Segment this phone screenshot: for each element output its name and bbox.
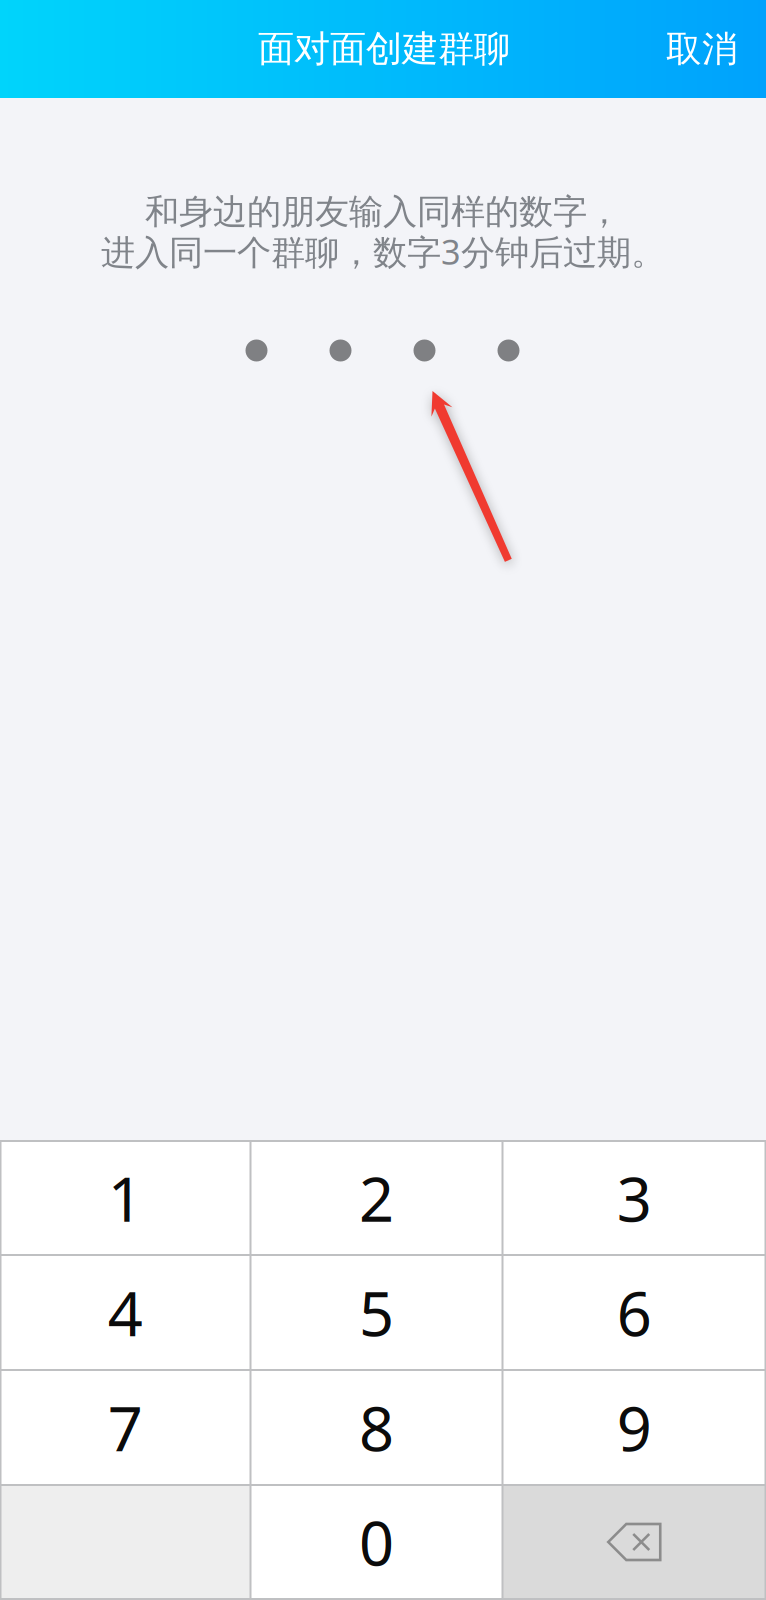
- button[interactable]: Delete: [502, 1485, 766, 1599]
- button[interactable]: 4: [0, 1255, 250, 1370]
- button[interactable]: 2: [250, 1141, 502, 1255]
- staticText: 2: [359, 1157, 394, 1239]
- staticText: 4: [108, 1272, 143, 1353]
- button[interactable]: 3: [502, 1141, 766, 1255]
- staticText: 6: [617, 1272, 652, 1353]
- staticText: 1: [108, 1157, 143, 1239]
- button[interactable]: 8: [250, 1370, 502, 1485]
- button[interactable]: 5: [250, 1255, 502, 1370]
- staticText: 9: [617, 1387, 652, 1468]
- staticText: 面对面创建群聊: [258, 27, 510, 71]
- staticText: 5: [359, 1272, 394, 1353]
- button[interactable]: 6: [502, 1255, 766, 1370]
- staticText: 和身边的朋友输入同样的数字，: [145, 191, 621, 233]
- button[interactable]: 1: [0, 1141, 250, 1255]
- staticText: 7: [108, 1387, 143, 1468]
- staticText: 0: [359, 1501, 394, 1583]
- button[interactable]: 取消: [636, 0, 766, 98]
- button[interactable]: 7: [0, 1370, 250, 1485]
- button[interactable]: 0: [250, 1485, 502, 1599]
- staticText: 8: [359, 1387, 394, 1468]
- staticText: 取消: [666, 27, 738, 71]
- staticText: 进入同一个群聊，数字3分钟后过期。: [101, 229, 665, 274]
- button[interactable]: 9: [502, 1370, 766, 1485]
- staticText: 3: [617, 1157, 652, 1239]
